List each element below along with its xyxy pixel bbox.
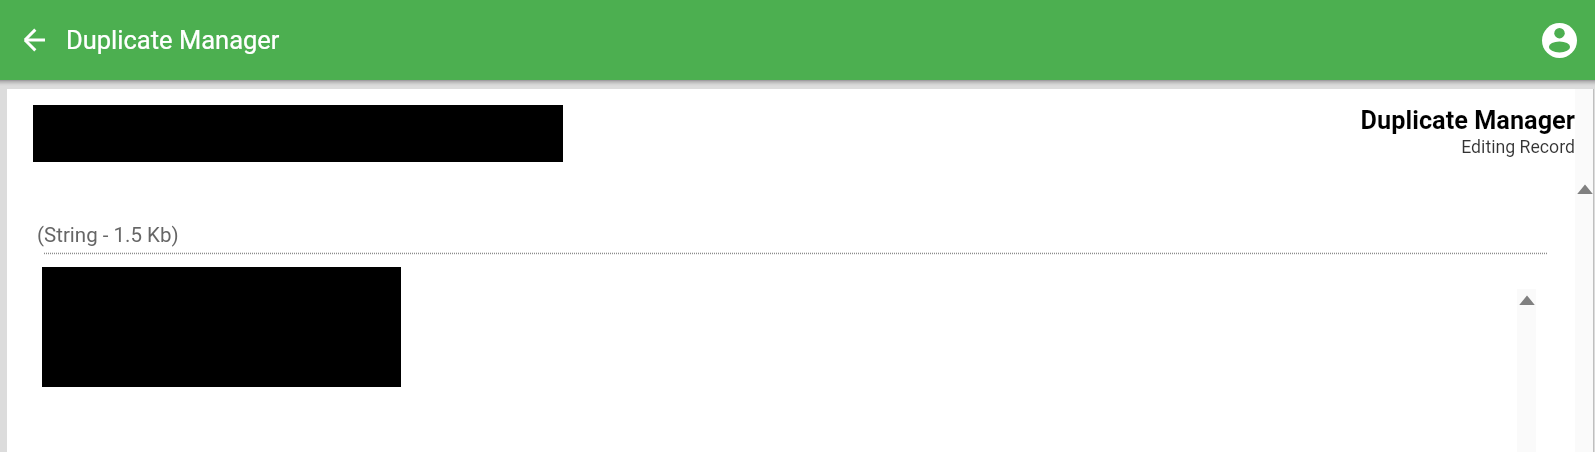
staticText: (String - 1.5 Kb) (37, 223, 179, 247)
staticText: Duplicate Manager (1360, 106, 1575, 136)
staticText: Editing Record (1461, 137, 1575, 158)
button[interactable]: Account (1535, 16, 1583, 64)
button[interactable]: Field scrollbar (1517, 289, 1536, 452)
staticText: Duplicate Manager (66, 25, 280, 55)
button[interactable]: Back (10, 16, 58, 64)
button[interactable]: Page scrollbar (1575, 89, 1593, 452)
